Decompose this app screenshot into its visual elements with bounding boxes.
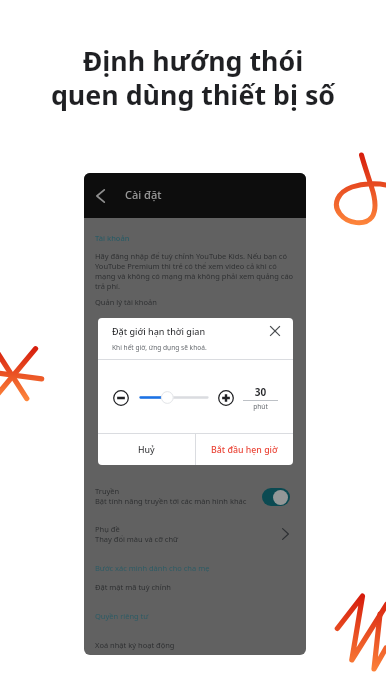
staticText: Bật tính năng truyền tới các màn hình kh… xyxy=(95,496,247,506)
staticText: Huỷ xyxy=(138,444,155,456)
staticText: 30 xyxy=(243,385,278,399)
staticText: Thay đổi màu và cỡ chữ xyxy=(95,534,179,544)
staticText: Tài khoản xyxy=(95,233,130,243)
button[interactable]: Back xyxy=(90,185,111,206)
button[interactable]: Close xyxy=(266,322,284,340)
staticText: Hãy đăng nhập để tuỳ chỉnh YouTube Kids.… xyxy=(95,251,295,291)
staticText: Xoá nhật ký hoạt động xyxy=(95,640,175,650)
staticText: Cài đặt xyxy=(125,187,162,202)
staticText: Đặt mật mã tuỳ chỉnh xyxy=(95,582,171,592)
staticText: phút xyxy=(243,402,278,411)
staticText: Phụ đề xyxy=(95,524,120,534)
staticText: Đặt giới hạn thời gian xyxy=(112,325,206,337)
button[interactable]: Bắt đầu hẹn giờ xyxy=(196,434,293,465)
button[interactable]: Increase xyxy=(218,390,234,406)
button[interactable]: Decrease xyxy=(113,390,129,406)
button[interactable]: Cast toggle xyxy=(262,488,290,506)
button[interactable]: 30 xyxy=(243,385,278,411)
staticText: Quản lý tài khoản xyxy=(95,297,157,307)
staticText: Bắt đầu hẹn giờ xyxy=(211,444,278,456)
button[interactable]: Open subtitles settings xyxy=(277,524,293,544)
staticText: Bước xác minh dành cho cha mẹ xyxy=(95,563,210,573)
button[interactable]: Time limit slider xyxy=(134,389,214,406)
staticText: Truyền xyxy=(95,486,120,496)
staticText: Định hướng thói quen dùng thiết bị số xyxy=(0,42,386,113)
button[interactable]: Huỷ xyxy=(98,434,195,465)
staticText: Khi hết giờ, ứng dụng sẽ khoá. xyxy=(112,343,207,352)
staticText: Quyền riêng tư xyxy=(95,611,149,621)
